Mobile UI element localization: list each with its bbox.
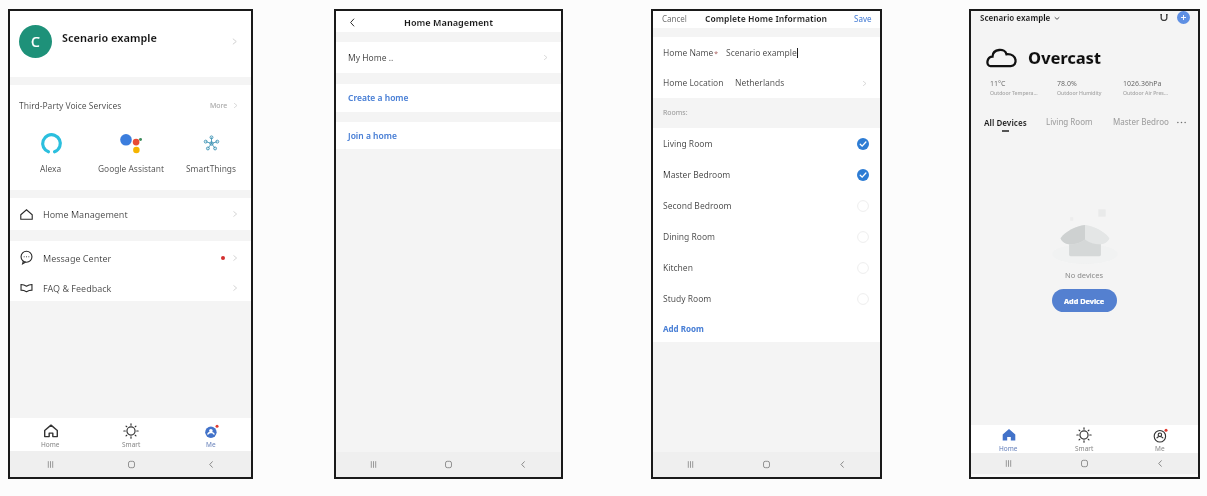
staticText: Google Assistant — [98, 163, 165, 174]
button[interactable]: Create a home — [348, 84, 550, 112]
staticText: Smart — [122, 440, 141, 449]
staticText: Third-Party Voice Services — [19, 100, 122, 112]
button[interactable]: Add device — [1177, 11, 1190, 24]
staticText: Dining Room — [663, 231, 716, 243]
button[interactable]: Message Center — [19, 241, 240, 274]
button[interactable]: More rooms — [1175, 116, 1187, 128]
staticText: Study Room — [663, 293, 712, 305]
button[interactable]: C — [10, 11, 251, 77]
button[interactable]: Home Name — [663, 37, 869, 68]
staticText: More — [210, 101, 228, 111]
button[interactable]: Second Bedroom — [663, 190, 869, 221]
button[interactable]: Save — [854, 13, 872, 24]
button[interactable]: Living Room — [663, 128, 869, 159]
button[interactable]: FAQ & Feedback — [19, 274, 240, 301]
button[interactable]: Me — [1122, 425, 1198, 453]
button[interactable]: Cancel — [662, 13, 687, 24]
staticText: Complete Home Information — [705, 13, 828, 25]
staticText: 1026.36hPa — [1123, 79, 1162, 89]
button[interactable]: Master Bedroom — [663, 159, 869, 190]
staticText: SmartThings — [186, 163, 237, 174]
staticText: Home Management — [404, 16, 494, 28]
staticText: No devices — [1065, 270, 1104, 280]
staticText: Add Room — [663, 323, 704, 334]
staticText: Home Name — [663, 47, 714, 59]
button[interactable]: Kitchen — [663, 252, 869, 283]
button[interactable]: Smart — [91, 418, 171, 451]
staticText: Overcast — [1028, 46, 1101, 68]
staticText: 78.0% — [1057, 79, 1077, 89]
button[interactable]: Dining Room — [663, 221, 869, 252]
staticText: C — [31, 32, 40, 51]
button[interactable]: Home — [10, 418, 91, 451]
staticText: Scenario example — [726, 47, 797, 59]
staticText: * — [714, 48, 719, 58]
staticText: Add Device — [1064, 296, 1105, 306]
staticText: Me — [206, 440, 216, 449]
staticText: Living Room — [663, 138, 713, 150]
button[interactable]: Join a home — [348, 122, 550, 149]
staticText: Second Bedroom — [663, 200, 732, 212]
button[interactable]: Study Room — [663, 283, 869, 314]
staticText: Kitchen — [663, 262, 693, 274]
staticText: Outdoor Humidity — [1057, 89, 1102, 96]
staticText: My Home .. — [348, 52, 394, 64]
button[interactable]: Add Room — [663, 314, 880, 342]
button[interactable]: Home Location — [663, 68, 869, 98]
staticText: FAQ & Feedback — [43, 282, 112, 294]
button[interactable]: My Home .. — [348, 42, 550, 73]
button[interactable]: SmartThings — [171, 126, 251, 190]
button[interactable]: Third-Party Voice Services — [19, 85, 240, 126]
button[interactable]: Home Management — [19, 198, 240, 230]
staticText: Scenario example — [62, 30, 158, 45]
staticText: Outdoor Tempera... — [990, 89, 1038, 96]
button[interactable]: Scenario example — [980, 12, 1060, 23]
button[interactable]: All Devices — [971, 117, 1027, 132]
staticText: Home — [999, 444, 1018, 453]
staticText: Scenario example — [980, 12, 1051, 23]
button[interactable]: Master Bedroo — [1113, 119, 1169, 130]
button[interactable]: Me — [171, 418, 251, 451]
button[interactable]: Home — [971, 425, 1046, 453]
staticText: Message Center — [43, 252, 112, 264]
staticText: Join a home — [348, 130, 397, 142]
button[interactable]: Google Assistant — [91, 126, 171, 190]
staticText: All Devices — [984, 117, 1027, 128]
staticText: Rooms: — [663, 108, 688, 118]
staticText: Outdoor Air Pres... — [1123, 89, 1168, 96]
staticText: 11°C — [990, 79, 1006, 89]
button[interactable]: Back — [344, 14, 360, 30]
button[interactable]: Add Device — [1052, 289, 1117, 312]
staticText: Home Management — [43, 208, 128, 220]
staticText: Home Location — [663, 77, 724, 89]
staticText: Create a home — [348, 92, 409, 104]
staticText: Smart — [1075, 444, 1094, 453]
button[interactable]: Scan — [1157, 11, 1170, 24]
button[interactable]: Living Room — [1046, 119, 1093, 130]
staticText: Home — [41, 440, 60, 449]
button[interactable]: Alexa — [10, 126, 91, 190]
staticText: Me — [1155, 444, 1165, 453]
staticText: Netherlands — [735, 77, 785, 89]
staticText: Master Bedroom — [663, 169, 731, 181]
staticText: Alexa — [40, 163, 62, 174]
button[interactable]: Smart — [1046, 425, 1122, 453]
